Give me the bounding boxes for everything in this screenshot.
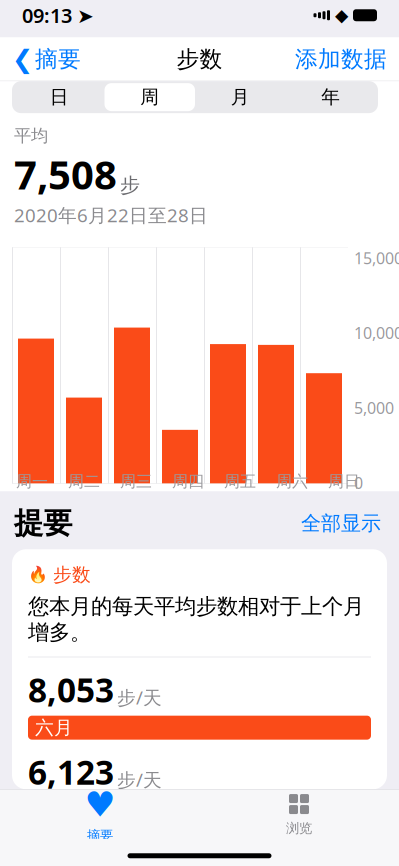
staticText: 周六 xyxy=(276,472,308,491)
staticText: 浏览 xyxy=(286,820,312,836)
staticText: 09:13 ➤ xyxy=(22,2,94,29)
staticText: 摘要 xyxy=(87,827,113,844)
staticText: 5,000 xyxy=(354,397,394,418)
staticText: 周一 xyxy=(16,472,48,491)
staticText: 添加数据 xyxy=(295,45,387,73)
staticText: 周四 xyxy=(172,472,204,491)
button[interactable]: 日 xyxy=(14,83,104,111)
button[interactable]: 年 xyxy=(285,83,376,111)
staticText: 6,123 xyxy=(28,750,114,794)
button[interactable]: 月 xyxy=(195,83,285,111)
button[interactable]: 全部显示 xyxy=(297,507,385,540)
staticText: 日 xyxy=(50,86,69,109)
staticText: ♥ xyxy=(84,785,115,824)
staticText: 平均 xyxy=(14,125,48,146)
staticText: 月 xyxy=(231,86,250,109)
staticText: 步 xyxy=(120,173,140,198)
staticText: 周三 xyxy=(120,472,152,491)
staticText: 0 xyxy=(354,472,363,493)
staticText: 🔥 xyxy=(28,566,48,584)
staticText: 7,508 xyxy=(14,147,117,200)
staticText: 周日 xyxy=(328,472,360,491)
staticText: ❮ xyxy=(12,45,33,74)
staticText: 六月 xyxy=(35,716,73,739)
staticText: 全部显示 xyxy=(301,511,381,536)
staticText: 周二 xyxy=(68,472,100,491)
button[interactable]: 周 xyxy=(104,83,195,111)
staticText: 周 xyxy=(140,86,159,109)
staticText: 15,000 xyxy=(354,247,399,268)
button[interactable]: ❮ xyxy=(8,39,85,80)
staticText: 您本月的每天平均步数相对于上个月增多。 xyxy=(28,593,364,646)
staticText: 步/天 xyxy=(117,685,162,710)
staticText: 2020年6月22日至28日 xyxy=(14,202,208,227)
button[interactable]: ♥ xyxy=(0,790,199,838)
staticText: 步/天 xyxy=(117,767,162,792)
staticText: 提要 xyxy=(14,505,72,541)
staticText: 步数 xyxy=(176,45,222,73)
staticText: 摘要 xyxy=(35,45,81,73)
staticText: 10,000 xyxy=(354,322,399,343)
staticText: 步数 xyxy=(53,563,91,586)
button[interactable]: 添加数据 xyxy=(291,39,391,79)
button[interactable]: 浏览 xyxy=(199,790,398,838)
staticText: 周五 xyxy=(224,472,256,491)
staticText: 8,053 xyxy=(28,667,114,712)
staticText: 年 xyxy=(321,86,340,109)
staticText: ◆ xyxy=(335,5,348,25)
